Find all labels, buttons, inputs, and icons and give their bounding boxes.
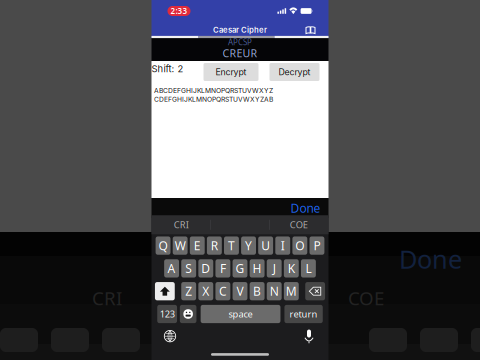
- button[interactable]: S: [181, 259, 196, 277]
- button[interactable]: T: [224, 236, 239, 255]
- staticText: X: [202, 283, 209, 299]
- staticText: COE: [290, 219, 308, 231]
- staticText: Encrypt: [215, 67, 246, 77]
- button[interactable]: COE: [270, 215, 328, 234]
- staticText: V: [236, 283, 243, 299]
- button[interactable]: return: [284, 305, 323, 323]
- staticText: B: [253, 283, 261, 299]
- button[interactable]: Decrypt: [269, 63, 319, 81]
- staticText: Done: [290, 200, 320, 216]
- button[interactable]: A: [164, 259, 179, 277]
- button[interactable]: Z: [181, 282, 196, 300]
- staticText: W: [175, 238, 186, 253]
- staticText: 123: [160, 308, 175, 320]
- staticText: D: [201, 260, 210, 276]
- button[interactable]: M: [284, 282, 299, 300]
- staticText: Q: [158, 238, 167, 253]
- staticText: CRI: [92, 286, 122, 310]
- button[interactable]: G: [232, 259, 247, 277]
- button[interactable]: Done: [290, 197, 328, 219]
- button[interactable]: E: [190, 236, 205, 255]
- button[interactable]: N: [267, 282, 282, 300]
- staticText: Decrypt: [278, 67, 310, 77]
- staticText: J: [273, 260, 276, 276]
- button[interactable]: J: [267, 259, 282, 277]
- staticText: Y: [245, 238, 252, 253]
- button[interactable]: D: [198, 259, 213, 277]
- staticText: APCSP: [228, 37, 252, 47]
- button[interactable]: I: [275, 236, 290, 255]
- staticText: Shift: 2: [151, 63, 183, 74]
- button[interactable]: Y: [241, 236, 256, 255]
- button[interactable]: O: [292, 236, 307, 255]
- staticText: C: [219, 283, 227, 299]
- staticText: ABCDEFGHIJKLMNOPQRSTUVWXYZ: [154, 86, 273, 94]
- button[interactable]: R: [207, 236, 222, 255]
- button[interactable]: W: [173, 236, 188, 255]
- button[interactable]: CRI: [152, 215, 210, 234]
- button[interactable]: Reference: [301, 22, 319, 38]
- staticText: CRI: [174, 219, 189, 231]
- staticText: L: [305, 260, 311, 276]
- staticText: O: [295, 238, 304, 253]
- staticText: P: [313, 238, 320, 253]
- staticText: space: [229, 308, 253, 320]
- button[interactable]: F: [215, 259, 230, 277]
- button[interactable]: Emoji: [180, 305, 196, 323]
- button[interactable]: P: [309, 236, 324, 255]
- staticText: COE: [348, 286, 384, 310]
- button[interactable]: H: [250, 259, 264, 277]
- staticText: return: [290, 308, 318, 320]
- button[interactable]: B: [250, 282, 265, 300]
- button[interactable]: Delete: [305, 282, 325, 300]
- staticText: G: [235, 260, 244, 276]
- button[interactable]: Dictate: [303, 329, 314, 344]
- staticText: CDEFGHIJKLMNOPQRSTUVWXYZAB: [154, 95, 273, 103]
- staticText: N: [270, 283, 279, 299]
- staticText: A: [168, 260, 176, 276]
- button[interactable]: C: [215, 282, 230, 300]
- staticText: M: [286, 283, 297, 299]
- staticText: U: [261, 238, 270, 253]
- button[interactable]: U: [258, 236, 273, 255]
- staticText: I: [281, 238, 285, 253]
- staticText: H: [253, 260, 262, 276]
- staticText: Caesar Cipher: [213, 25, 267, 35]
- button[interactable]: Q: [156, 236, 170, 255]
- staticText: 2:33: [170, 6, 187, 16]
- staticText: E: [194, 238, 201, 253]
- button[interactable]: Shift: [155, 282, 175, 300]
- staticText: T: [228, 238, 235, 253]
- button[interactable]: space: [201, 305, 280, 323]
- button[interactable]: V: [233, 282, 247, 300]
- button[interactable]: X: [198, 282, 213, 300]
- button[interactable]: L: [301, 259, 316, 277]
- button[interactable]: Encrypt: [203, 63, 258, 81]
- staticText: K: [288, 260, 295, 276]
- staticText: R: [211, 238, 218, 253]
- button[interactable]: Switch keyboard: [163, 330, 176, 343]
- staticText: Done: [399, 242, 462, 276]
- button[interactable]: K: [284, 259, 299, 277]
- staticText: S: [185, 260, 192, 276]
- button[interactable]: 123: [157, 305, 177, 323]
- staticText: Z: [185, 283, 192, 299]
- staticText: F: [220, 260, 226, 276]
- staticText: CREUR: [222, 46, 257, 60]
